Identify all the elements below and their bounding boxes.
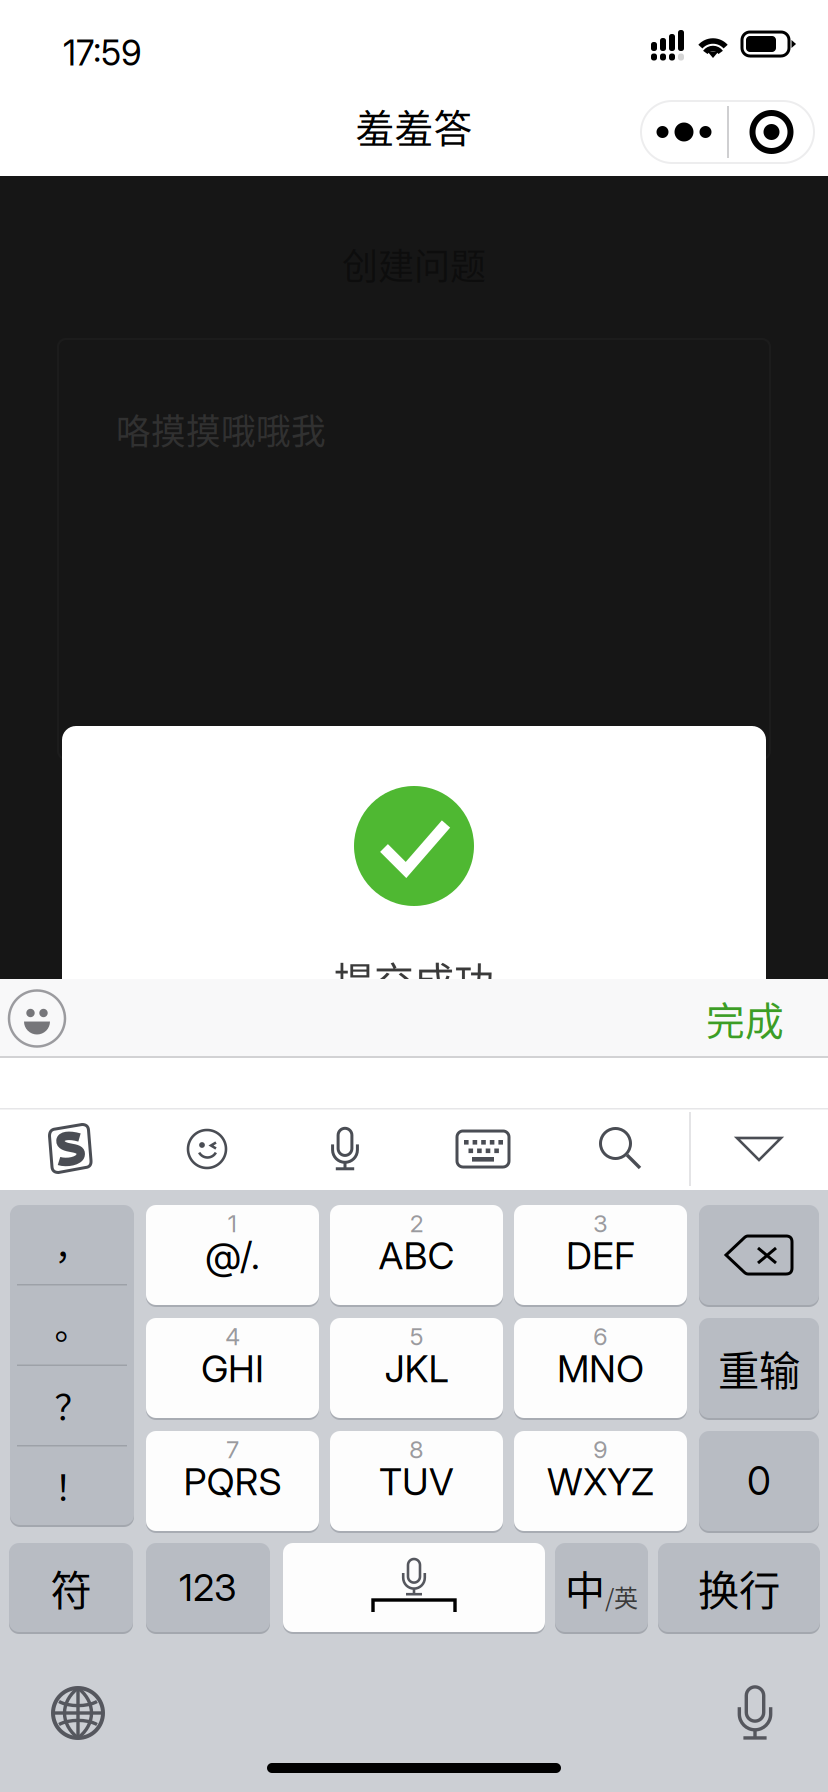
button[interactable]: Voice input (276, 1108, 414, 1190)
button[interactable]: 完成 (682, 979, 808, 1058)
staticText: 中 (565, 1558, 605, 1616)
staticText: 羞羞答 (355, 98, 472, 154)
staticText: 咯摸摸哦哦我 (116, 404, 326, 454)
staticText: DEF (566, 1233, 635, 1278)
staticText: ABC (378, 1233, 454, 1278)
button[interactable]: 4 (146, 1317, 319, 1419)
button[interactable]: 6 (514, 1317, 687, 1419)
staticText: ！ (54, 1461, 89, 1511)
staticText: GHI (201, 1346, 264, 1391)
staticText: 提交成功 (334, 950, 494, 1008)
button[interactable]: 7 (146, 1430, 319, 1532)
button[interactable]: 123 (146, 1542, 270, 1633)
staticText: 8 (409, 1435, 424, 1464)
staticText: ？ (54, 1380, 89, 1431)
staticText: JKL (384, 1346, 448, 1391)
staticText: 123 (179, 1565, 237, 1610)
staticText: 0 (747, 1458, 771, 1504)
button[interactable]: Hide keyboard (690, 1108, 828, 1190)
staticText: 5 (409, 1322, 423, 1351)
button[interactable]: 1 (146, 1204, 319, 1306)
button[interactable]: 换行 (658, 1542, 820, 1633)
staticText: 创建问题 (342, 238, 486, 290)
staticText: MNO (557, 1346, 644, 1391)
button[interactable]: Stickers (138, 1108, 276, 1190)
button[interactable]: ， (10, 1205, 134, 1284)
button[interactable]: 2 (330, 1204, 503, 1306)
button[interactable]: 3 (514, 1204, 687, 1306)
staticText: 换行 (698, 1558, 780, 1617)
staticText: 7 (226, 1435, 239, 1464)
staticText: 符 (50, 1558, 91, 1617)
button[interactable]: ？ (10, 1366, 134, 1445)
button[interactable]: Dictate (710, 1673, 800, 1753)
button[interactable]: 8 (330, 1430, 503, 1532)
button[interactable]: Space (283, 1542, 545, 1633)
button[interactable]: Emoji (0, 979, 76, 1058)
button[interactable]: 5 (330, 1317, 503, 1419)
staticText: /英 (605, 1579, 638, 1614)
button[interactable]: 中 (555, 1542, 648, 1633)
staticText: TUV (379, 1459, 454, 1504)
staticText: 9 (593, 1435, 608, 1464)
staticText: 1 (227, 1209, 237, 1238)
button[interactable]: Switch keyboard (33, 1673, 123, 1753)
staticText: 完成 (706, 990, 784, 1046)
staticText: WXYZ (547, 1459, 654, 1504)
button[interactable]: 符 (9, 1542, 133, 1633)
staticText: 重输 (718, 1338, 800, 1398)
staticText: ， (54, 1219, 89, 1270)
staticText: PQRS (183, 1459, 281, 1504)
staticText: 2 (409, 1209, 423, 1238)
button[interactable]: Keyboard settings (414, 1108, 552, 1190)
staticText: @/. (205, 1233, 260, 1278)
button[interactable]: More options (641, 101, 814, 163)
button[interactable]: Sogou input (0, 1108, 138, 1190)
staticText: 6 (593, 1322, 608, 1351)
staticText: 4 (225, 1322, 240, 1351)
staticText: 3 (593, 1209, 608, 1238)
staticText: 17:59 (63, 32, 142, 74)
button[interactable]: 9 (514, 1430, 687, 1532)
button[interactable]: 。 (10, 1285, 134, 1364)
button[interactable]: ！ (10, 1446, 134, 1525)
button[interactable] (699, 1204, 819, 1306)
button[interactable]: 0 (699, 1430, 819, 1532)
button[interactable]: Search (552, 1108, 690, 1190)
staticText: 。 (54, 1300, 89, 1350)
button[interactable]: 重输 (699, 1317, 819, 1419)
